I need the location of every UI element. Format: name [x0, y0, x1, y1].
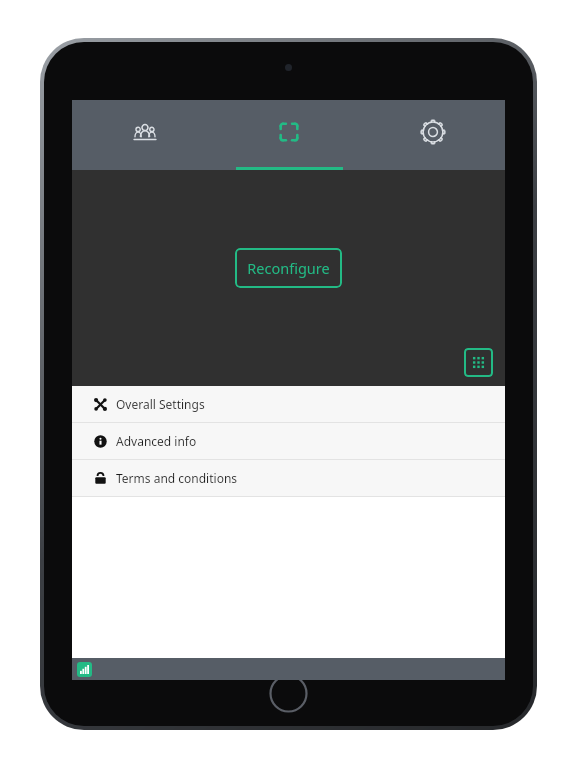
staticText: Terms and conditions [116, 470, 238, 486]
button[interactable]: Advanced info [72, 423, 505, 459]
staticText: Reconfigure [247, 258, 330, 278]
staticText: Overall Settings [116, 396, 205, 412]
button[interactable]: Grid view [464, 348, 493, 377]
button[interactable]: Scan [217, 100, 361, 170]
button[interactable]: Overall Settings [72, 386, 505, 422]
button[interactable]: Terms and conditions [72, 460, 505, 496]
button[interactable]: Settings [361, 100, 505, 170]
button[interactable]: Participants [72, 100, 217, 170]
button[interactable]: Reconfigure [235, 248, 342, 288]
button[interactable]: Signal strength [77, 662, 92, 677]
staticText: Advanced info [116, 433, 197, 449]
